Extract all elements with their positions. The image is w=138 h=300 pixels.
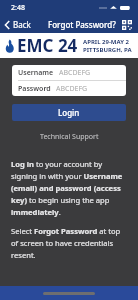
staticText: APRIL 29-MAY 2	[83, 38, 130, 46]
staticText: ABCDEFG	[56, 84, 88, 94]
button[interactable]: Username	[12, 65, 126, 80]
staticText: ABCDEFG	[59, 68, 91, 78]
staticText: 2:48	[11, 3, 25, 13]
button[interactable]: Password	[12, 81, 126, 96]
staticText: Login	[58, 107, 80, 118]
button[interactable]: EMC 24	[0, 33, 138, 58]
button[interactable]: Technical Support	[36, 128, 103, 146]
button[interactable]: Login	[12, 104, 126, 121]
staticText: Username	[18, 68, 54, 78]
staticText: Select Forgot Password at top of screen …	[11, 226, 127, 260]
button[interactable]: Back	[0, 16, 36, 33]
staticText: PITTSBURGH, PA	[83, 46, 132, 54]
staticText: Back	[13, 19, 31, 30]
staticText: EMC 24	[17, 34, 78, 57]
button[interactable]: Forgot Password?	[48, 19, 116, 30]
staticText: Log in to your account by signing in wit…	[11, 159, 127, 217]
staticText: Password	[18, 84, 51, 94]
button[interactable]: Scan QR code	[119, 17, 134, 32]
